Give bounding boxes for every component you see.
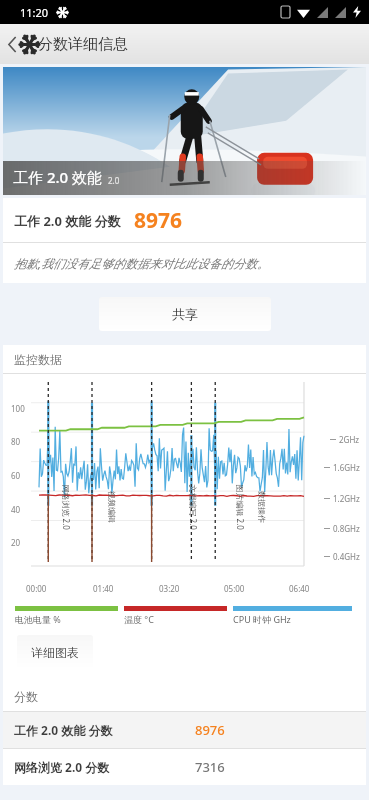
staticText: 网络浏览 2.0 分数 — [14, 759, 110, 775]
staticText: 网格浏览 2.0 — [60, 484, 71, 530]
staticText: 温度 °C — [124, 613, 154, 625]
staticText: 数据操作 — [257, 491, 267, 523]
staticText: 01:40 — [93, 583, 114, 594]
staticText: 分数 — [14, 689, 38, 704]
staticText: 100 — [11, 403, 25, 414]
staticText: 0.4GHz — [333, 551, 360, 562]
staticText: 工作 2.0 效能 分数 — [14, 212, 121, 230]
staticText: 视频编辑 — [107, 491, 117, 523]
staticText: 1.2GHz — [333, 493, 360, 504]
staticText: 分数详细信息 — [38, 35, 128, 54]
staticText: CPU 时钟 GHz — [233, 613, 291, 625]
button[interactable]: 共享 — [99, 297, 271, 331]
staticText: 监控数据 — [14, 352, 62, 367]
staticText: 8976 — [195, 721, 225, 739]
staticText: 共享 — [172, 306, 198, 322]
button[interactable]: 网络浏览 2.0 分数 — [3, 749, 366, 785]
staticText: 8976 — [134, 206, 183, 235]
staticText: 图片编辑 2.0 — [234, 484, 245, 530]
staticText: 电池电量 % — [15, 613, 61, 625]
staticText: 详细图表 — [31, 645, 79, 660]
staticText: 60 — [11, 470, 21, 481]
staticText: 7316 — [195, 758, 225, 776]
staticText: 2.0 — [108, 175, 120, 186]
button[interactable]: 工作 2.0 效能 — [3, 67, 366, 195]
staticText: 工作 2.0 效能 分数 — [14, 722, 113, 738]
staticText: 抱歉,我们没有足够的数据来对比此设备的分数。 — [14, 255, 270, 271]
button[interactable]: 详细图表 — [17, 635, 93, 669]
staticText: 工作 2.0 效能 — [13, 167, 103, 187]
staticText: 2GHz — [339, 434, 360, 445]
staticText: 40 — [11, 504, 21, 515]
button[interactable]: Back — [4, 35, 43, 54]
staticText: 80 — [11, 436, 21, 447]
staticText: 20 — [11, 537, 21, 548]
button[interactable]: 工作 2.0 效能 分数 — [3, 198, 366, 242]
staticText: 0.8GHz — [333, 523, 360, 534]
staticText: 1.6GHz — [333, 462, 360, 473]
staticText: 05:00 — [224, 583, 245, 594]
staticText: 06:40 — [289, 583, 310, 594]
staticText: 03:20 — [159, 583, 180, 594]
staticText: 文档编写 2.0 — [187, 484, 198, 530]
staticText: 00:00 — [26, 583, 47, 594]
staticText: 11:20 — [20, 5, 49, 20]
button[interactable]: 工作 2.0 效能 分数 — [3, 712, 366, 748]
